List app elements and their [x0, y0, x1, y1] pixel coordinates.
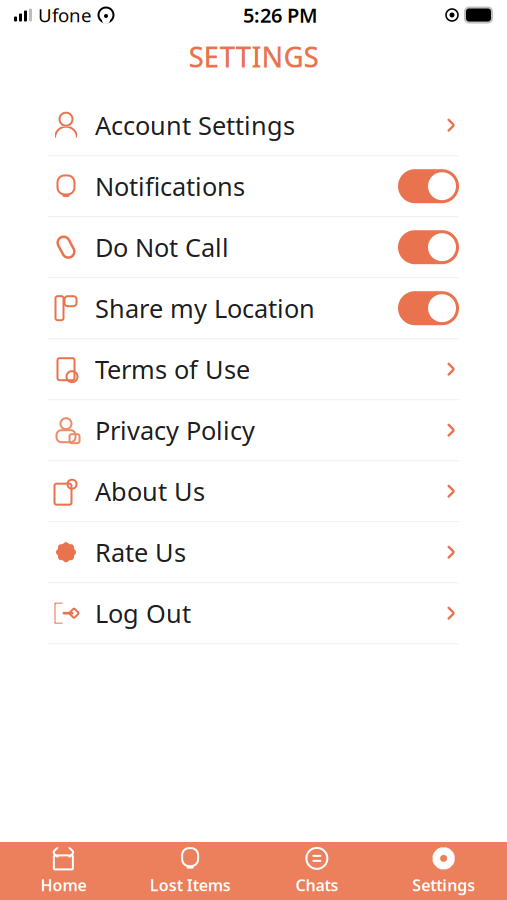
button[interactable]: Notifications — [0, 156, 507, 217]
button[interactable]: About Us — [0, 461, 507, 522]
staticText: Settings — [412, 874, 475, 896]
staticText: Share my Location — [95, 291, 315, 325]
staticText: Notifications — [95, 169, 245, 203]
button[interactable]: Terms of Use — [0, 339, 507, 400]
button[interactable]: Do Not Call — [0, 217, 507, 278]
staticText: Privacy Policy — [95, 413, 255, 447]
staticText: 5:26 PM — [243, 2, 318, 28]
button[interactable]: Account Settings — [0, 95, 507, 156]
staticText: Chats — [295, 874, 338, 896]
button[interactable]: Home — [0, 840, 127, 900]
button[interactable]: Lost Items — [127, 840, 254, 900]
staticText: SETTINGS — [188, 38, 318, 75]
staticText: Rate Us — [95, 535, 186, 569]
staticText: Ufone — [38, 3, 92, 27]
button[interactable]: Chats — [253, 840, 380, 900]
staticText: Terms of Use — [95, 352, 250, 386]
button[interactable]: Settings — [380, 840, 507, 900]
staticText: Do Not Call — [95, 230, 229, 264]
button[interactable]: Log Out — [0, 583, 507, 644]
button[interactable]: Rate Us — [0, 522, 507, 583]
staticText: Home — [40, 874, 86, 896]
staticText: Account Settings — [95, 108, 295, 142]
button[interactable]: Privacy Policy — [0, 400, 507, 461]
staticText: Lost Items — [150, 874, 231, 896]
staticText: Log Out — [95, 596, 191, 630]
button[interactable]: Share my Location — [0, 278, 507, 339]
staticText: About Us — [95, 474, 205, 508]
